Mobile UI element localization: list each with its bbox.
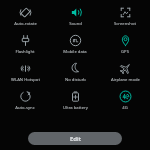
staticText: GPS (121, 49, 129, 55)
staticText: Auto-sync (15, 105, 35, 111)
staticText: Mobile data (63, 49, 87, 55)
button[interactable]: GPS (100, 31, 150, 59)
button[interactable]: WLAN Hotspot (0, 59, 50, 87)
staticText: Auto-rotate (14, 21, 37, 27)
button[interactable]: Screenshot (100, 3, 150, 31)
staticText: 4G (122, 105, 128, 111)
button[interactable]: No disturb (50, 59, 100, 87)
staticText: Sound (69, 21, 82, 27)
button[interactable]: Sound (50, 3, 100, 31)
button[interactable]: Edit (28, 132, 122, 145)
button[interactable]: Ultra battery (50, 87, 100, 115)
staticText: Edit (70, 135, 81, 143)
staticText: Ultra battery (63, 105, 88, 111)
button[interactable]: 4G (100, 87, 150, 115)
staticText: Screenshot (114, 21, 136, 27)
staticText: WLAN Hotspot (11, 77, 40, 83)
button[interactable]: Auto-rotate (0, 3, 50, 31)
button[interactable]: Airplane mode (100, 59, 150, 87)
staticText: No disturb (65, 77, 86, 83)
button[interactable]: Auto-sync (0, 87, 50, 115)
staticText: Airplane mode (111, 77, 140, 83)
button[interactable]: Flashlight (0, 31, 50, 59)
staticText: Flashlight (15, 49, 35, 55)
button[interactable]: Mobile data (50, 31, 100, 59)
